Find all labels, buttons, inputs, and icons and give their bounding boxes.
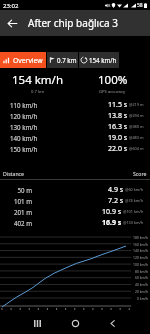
button[interactable]: 150 km/h [0, 143, 150, 154]
button[interactable]: 140 km/h [0, 132, 150, 143]
button[interactable]: 154 km/h [79, 52, 119, 68]
staticText: 10.9 s [102, 207, 122, 217]
staticText: 22.0 s [108, 144, 128, 154]
staticText: 11.5 s [108, 100, 128, 110]
staticText: @101 km/h [123, 209, 144, 214]
staticText: 201 m [0, 208, 32, 216]
button[interactable]: 0.7 km [47, 52, 78, 68]
staticText: 100 km/h [133, 262, 149, 267]
button[interactable]: 120 km/h [0, 110, 150, 121]
staticText: 150 km/h [10, 145, 38, 153]
staticText: 0 km/h [137, 296, 149, 301]
staticText: 101 m [0, 197, 32, 205]
staticText: 154 km/h [89, 56, 117, 64]
staticText: 110 km/h [10, 101, 38, 109]
staticText: 58 [137, 2, 143, 9]
staticText: 23:02 [3, 2, 19, 10]
staticText: 180 km/h [133, 235, 149, 240]
staticText: 0.7 km [31, 89, 45, 95]
staticText: @133 km/h [123, 220, 144, 225]
staticText: 16.9 s [102, 218, 122, 228]
button[interactable]: Home [63, 313, 87, 334]
staticText: @60 km/h [125, 187, 144, 192]
staticText: 140 km/h [10, 134, 38, 142]
staticText: 80 km/h [135, 269, 149, 274]
staticText: 140 km/h [133, 248, 149, 253]
staticText: @380 m [129, 124, 144, 129]
staticText: 7.2 s [108, 196, 124, 206]
staticText: 13.8 s [108, 111, 128, 121]
staticText: 60 km/h [135, 275, 149, 280]
staticText: Score [133, 170, 147, 177]
staticText: @483 m [129, 135, 144, 140]
button[interactable]: Navigate up [0, 11, 24, 35]
staticText: 19.0 s [108, 133, 128, 143]
staticText: @604 m [129, 146, 144, 151]
staticText: 50 m [0, 186, 32, 194]
staticText: @74 km/h [125, 198, 144, 203]
staticText: Overview [13, 56, 43, 65]
staticText: 402 m [0, 219, 32, 227]
staticText: GPS accuracy [99, 89, 126, 95]
staticText: @219 m [129, 102, 144, 107]
staticText: After chip bağlıca 3 [28, 16, 118, 30]
staticText: 160 km/h [133, 242, 149, 247]
button[interactable]: 402 m [0, 217, 150, 228]
button[interactable]: Overview [0, 52, 46, 68]
button[interactable]: Recent apps [25, 313, 49, 334]
staticText: Distance [3, 170, 25, 177]
staticText: @294 m [129, 113, 144, 118]
staticText: 4.9 s [108, 185, 124, 195]
button[interactable]: 130 km/h [0, 121, 150, 132]
button[interactable]: Back [100, 313, 124, 334]
staticText: 16.3 s [108, 122, 128, 132]
staticText: 0.7 km [57, 56, 77, 64]
staticText: 120 km/h [133, 255, 149, 260]
button[interactable]: 201 m [0, 206, 150, 217]
staticText: 154 km/h [12, 72, 64, 88]
staticText: 130 km/h [10, 123, 38, 131]
button[interactable]: 50 m [0, 184, 150, 195]
staticText: 40 km/h [135, 282, 149, 287]
button[interactable]: 101 m [0, 195, 150, 206]
button[interactable]: 110 km/h [0, 99, 150, 110]
staticText: 120 km/h [10, 112, 38, 120]
staticText: 100% [98, 72, 128, 88]
staticText: 20 km/h [135, 289, 149, 294]
